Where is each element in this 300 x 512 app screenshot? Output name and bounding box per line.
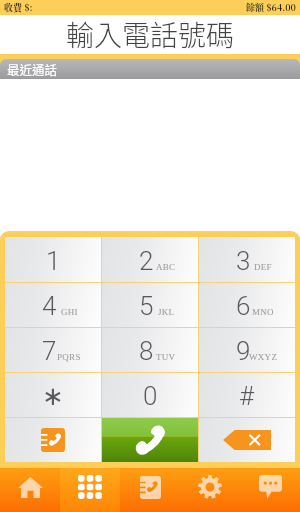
button[interactable]: # <box>199 373 295 417</box>
button[interactable]: Call <box>102 418 198 462</box>
button[interactable]: 4 <box>5 283 101 327</box>
staticText: ∗ <box>42 381 64 411</box>
button[interactable]: 5 <box>102 283 198 327</box>
staticText: PQRS <box>57 352 81 362</box>
staticText: 4 <box>42 291 57 321</box>
button[interactable]: 0 <box>102 373 198 417</box>
button[interactable]: Delete <box>199 418 295 462</box>
staticText: # <box>239 381 255 411</box>
button[interactable]: 3 <box>199 237 295 282</box>
staticText: DEF <box>254 262 272 272</box>
staticText: TUV <box>156 352 176 362</box>
button[interactable]: Contacts <box>5 418 101 462</box>
staticText: 3 <box>236 246 251 276</box>
staticText: 2 <box>139 246 154 276</box>
staticText: 6 <box>236 291 251 321</box>
button[interactable]: 1 <box>5 237 101 282</box>
button[interactable]: 最近通話 <box>0 59 300 79</box>
staticText: 5 <box>139 291 154 321</box>
staticText: 7 <box>42 336 57 366</box>
button[interactable]: 7 <box>5 328 101 372</box>
staticText: 收費 $: <box>4 1 33 14</box>
staticText: 最近通話 <box>7 60 58 78</box>
button[interactable]: 6 <box>199 283 295 327</box>
button[interactable]: Contacts <box>120 468 180 512</box>
button[interactable]: Dialpad <box>60 468 120 512</box>
button[interactable]: Settings <box>180 468 240 512</box>
button[interactable]: Home <box>0 468 60 512</box>
staticText: JKL <box>158 307 175 317</box>
button[interactable]: 9 <box>199 328 295 372</box>
staticText: 輸入電話號碼 <box>66 14 235 53</box>
staticText: 0 <box>143 381 158 411</box>
button[interactable]: 2 <box>102 237 198 282</box>
button[interactable]: ∗ <box>5 373 101 417</box>
button[interactable]: 8 <box>102 328 198 372</box>
staticText: 8 <box>139 336 154 366</box>
staticText: WXYZ <box>249 352 278 362</box>
staticText: 餘額 $64.00 <box>246 1 296 14</box>
button[interactable]: Messages <box>240 468 300 512</box>
staticText: GHI <box>61 307 78 317</box>
staticText: 9 <box>236 336 251 366</box>
staticText: 1 <box>46 246 61 276</box>
staticText: MNO <box>252 307 274 317</box>
staticText: ABC <box>156 262 176 272</box>
